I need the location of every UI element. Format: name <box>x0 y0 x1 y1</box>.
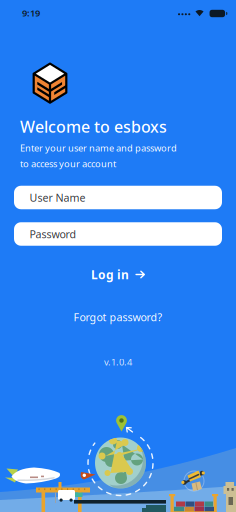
button[interactable]: Log in <box>58 262 178 286</box>
button[interactable]: User Name <box>14 186 222 209</box>
staticText: Password <box>29 227 76 241</box>
staticText: Forgot password? <box>73 310 162 324</box>
staticText: User Name <box>29 190 85 205</box>
staticText: v.1.0.4 <box>104 356 132 368</box>
staticText: Welcome to esboxs <box>20 116 167 137</box>
staticText: 9:19 <box>22 7 40 19</box>
button[interactable]: Forgot password? <box>48 308 188 326</box>
button[interactable]: Password <box>14 222 222 246</box>
staticText: Enter your user name and password to acc… <box>20 142 177 170</box>
staticText: Log in <box>91 266 129 282</box>
